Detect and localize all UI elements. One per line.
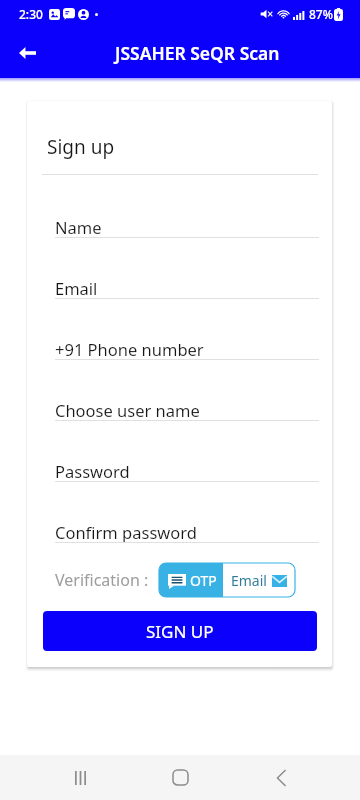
staticText: Email xyxy=(55,277,98,299)
button[interactable]: Home xyxy=(158,755,202,800)
button[interactable]: Choose user name xyxy=(55,384,319,421)
button[interactable]: Email xyxy=(223,563,295,597)
staticText: Password xyxy=(55,460,130,482)
button[interactable]: Recents xyxy=(58,755,102,800)
staticText: 2:30 xyxy=(19,6,43,22)
staticText: Confirm password xyxy=(55,521,197,543)
staticText: OTP xyxy=(190,571,217,590)
staticText: Choose user name xyxy=(55,399,200,421)
staticText: Email xyxy=(231,571,267,590)
staticText: Verification : xyxy=(55,569,149,591)
button[interactable]: Name xyxy=(55,201,319,238)
button[interactable]: +91 Phone number xyxy=(55,323,319,360)
staticText: JSSAHER SeQR Scan xyxy=(115,41,280,65)
button[interactable]: Back xyxy=(11,37,43,69)
button[interactable]: Password xyxy=(55,445,319,482)
button[interactable]: Back xyxy=(259,755,303,800)
staticText: Name xyxy=(55,216,102,238)
button[interactable]: Confirm password xyxy=(55,506,319,543)
button[interactable]: SIGN UP xyxy=(43,611,317,651)
button[interactable]: Email xyxy=(55,262,319,299)
staticText: Sign up xyxy=(47,134,115,160)
staticText: 87% xyxy=(309,6,333,22)
staticText: SIGN UP xyxy=(146,620,214,643)
staticText: +91 Phone number xyxy=(55,338,204,360)
button[interactable]: OTP xyxy=(159,563,223,597)
